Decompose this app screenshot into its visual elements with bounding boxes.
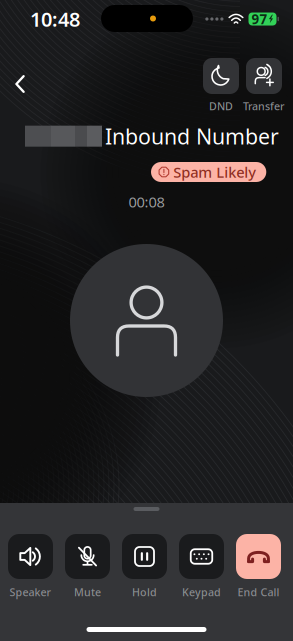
button[interactable]: Mute — [65, 534, 110, 599]
staticText: 10:48 — [30, 6, 80, 32]
button[interactable]: Hold — [122, 534, 167, 599]
button[interactable]: End Call — [236, 534, 281, 599]
button[interactable]: Transfer — [246, 58, 282, 113]
button[interactable]: Speaker — [8, 534, 53, 599]
staticText: Spam Likely — [173, 162, 256, 182]
staticText: Transfer — [243, 99, 285, 113]
button[interactable]: Back — [0, 64, 40, 104]
staticText: Keypad — [182, 585, 221, 599]
staticText: Speaker — [9, 585, 51, 599]
button[interactable]: Keypad — [179, 534, 224, 599]
staticText: 00:08 — [128, 192, 164, 211]
staticText: DND — [209, 99, 233, 113]
staticText: Inbound Number — [105, 122, 279, 150]
staticText: End Call — [237, 585, 279, 599]
button[interactable]: DND — [203, 58, 239, 113]
staticText: Mute — [74, 585, 101, 599]
staticText: 97 — [251, 10, 267, 28]
staticText: Hold — [132, 585, 157, 599]
